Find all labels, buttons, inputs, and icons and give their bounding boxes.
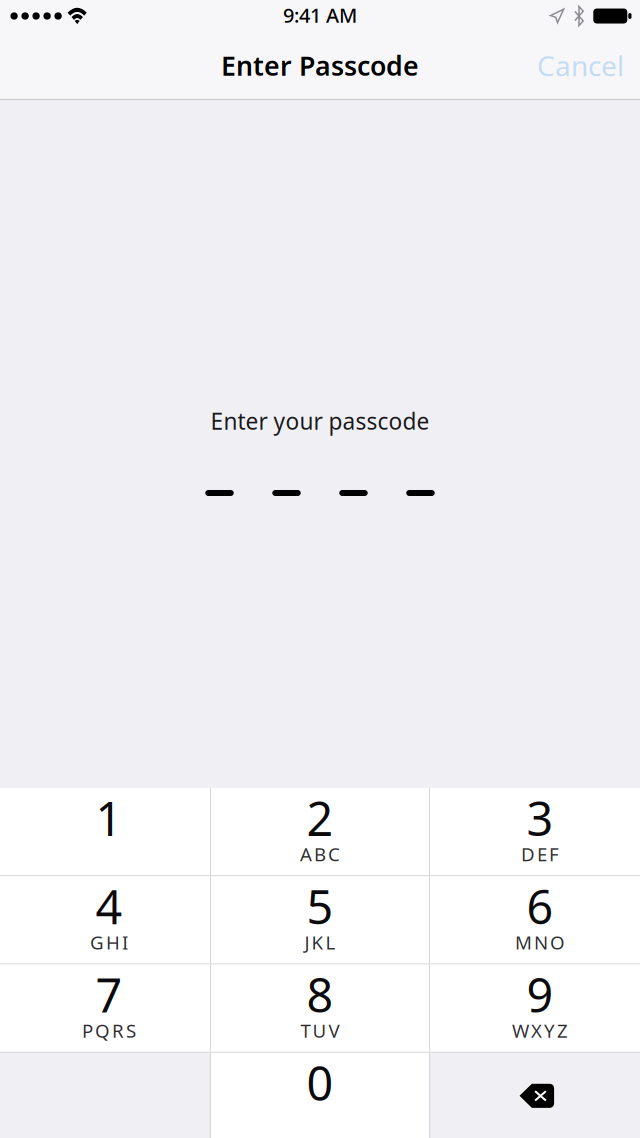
staticText: P Q R S bbox=[82, 1018, 136, 1043]
staticText: D E F bbox=[521, 842, 559, 866]
button[interactable]: Cancel bbox=[515, 39, 640, 100]
staticText: 3 bbox=[526, 787, 553, 849]
button[interactable]: 8 bbox=[211, 964, 429, 1052]
button[interactable]: 3 bbox=[430, 788, 640, 875]
staticText: Cancel bbox=[537, 47, 624, 84]
staticText: A B C bbox=[300, 842, 340, 866]
staticText: M N O bbox=[515, 930, 565, 955]
staticText: 9:41 AM bbox=[283, 2, 357, 28]
button[interactable]: 1 bbox=[0, 788, 210, 875]
staticText: 7 bbox=[95, 963, 122, 1025]
staticText: 2 bbox=[306, 787, 333, 849]
staticText: T U V bbox=[300, 1018, 339, 1043]
button[interactable]: 9 bbox=[430, 964, 640, 1052]
button[interactable]: 6 bbox=[430, 876, 640, 963]
button[interactable]: 0 bbox=[211, 1053, 429, 1138]
staticText: 8 bbox=[306, 963, 333, 1025]
staticText: 4 bbox=[95, 875, 122, 937]
staticText: 0 bbox=[306, 1052, 333, 1114]
button[interactable]: 2 bbox=[211, 788, 429, 875]
staticText: 6 bbox=[526, 875, 553, 937]
staticText: Enter your passcode bbox=[210, 406, 429, 436]
button[interactable]: Delete bbox=[430, 1053, 640, 1138]
staticText: 1 bbox=[95, 787, 122, 849]
button[interactable]: 5 bbox=[211, 876, 429, 963]
staticText: G H I bbox=[90, 930, 128, 955]
staticText: W X Y Z bbox=[512, 1018, 568, 1043]
staticText: J K L bbox=[304, 930, 335, 955]
staticText: 5 bbox=[306, 875, 333, 937]
staticText: 9 bbox=[526, 963, 553, 1025]
button[interactable]: 7 bbox=[0, 964, 210, 1052]
staticText: Enter Passcode bbox=[221, 48, 419, 83]
button[interactable]: 4 bbox=[0, 876, 210, 963]
